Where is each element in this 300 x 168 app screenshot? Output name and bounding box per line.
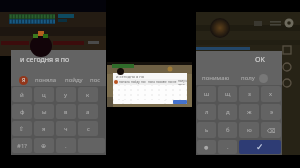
- staticText: ч: [64, 125, 68, 133]
- button[interactable]: [131, 90, 138, 95]
- button[interactable]: ⌫: [261, 122, 281, 138]
- button[interactable]: полу: [241, 74, 255, 82]
- button[interactable]: [138, 95, 145, 100]
- button[interactable]: [131, 85, 138, 90]
- button[interactable]: понимаю: [202, 74, 230, 82]
- button[interactable]: Keyboard logo: [19, 76, 28, 85]
- button[interactable]: ы: [34, 104, 54, 119]
- button[interactable]: [152, 90, 159, 95]
- button[interactable]: д: [218, 104, 237, 120]
- button[interactable]: пойду: [65, 76, 83, 84]
- button[interactable]: [173, 95, 180, 100]
- button[interactable]: [180, 90, 187, 95]
- button[interactable]: пойду: [131, 80, 140, 84]
- button[interactable]: поняла: [119, 80, 130, 84]
- button[interactable]: б: [218, 122, 237, 138]
- button[interactable]: OK: [196, 51, 282, 69]
- button[interactable]: ч: [56, 121, 76, 136]
- staticText: ⊕: [41, 142, 47, 149]
- staticText: й: [20, 91, 24, 99]
- staticText: к: [86, 91, 90, 99]
- button[interactable]: и сегодня я по: [113, 73, 187, 79]
- button[interactable]: ж: [239, 104, 259, 120]
- staticText: ь: [205, 126, 209, 134]
- button[interactable]: [159, 95, 166, 100]
- button[interactable]: Enter: [173, 100, 187, 104]
- button[interactable]: [125, 90, 131, 95]
- button[interactable]: я: [34, 121, 54, 136]
- button[interactable]: з: [239, 86, 259, 102]
- button[interactable]: ь: [197, 122, 216, 138]
- button[interactable]: Enter: [239, 140, 281, 154]
- button[interactable]: поняла: [35, 76, 57, 84]
- button[interactable]: Language: [123, 100, 131, 104]
- button[interactable]: пока: [148, 80, 155, 84]
- button[interactable]: [173, 85, 180, 90]
- button[interactable]: [152, 95, 159, 100]
- button[interactable]: [113, 85, 119, 90]
- button[interactable]: [119, 90, 125, 95]
- button[interactable]: похоже: [156, 80, 167, 84]
- button[interactable]: [113, 90, 119, 95]
- staticText: ✓: [256, 142, 264, 152]
- button[interactable]: Change language: [34, 138, 54, 153]
- button[interactable]: [125, 95, 131, 100]
- button[interactable]: Symbols: [113, 100, 123, 104]
- button[interactable]: л: [197, 104, 216, 120]
- button[interactable]: ю: [239, 122, 259, 138]
- button[interactable]: пос: [141, 80, 147, 84]
- staticText: .: [227, 143, 229, 151]
- button[interactable]: ш: [197, 86, 216, 102]
- button[interactable]: к: [78, 87, 98, 102]
- button[interactable]: [166, 90, 173, 95]
- button[interactable]: [119, 95, 125, 100]
- button[interactable]: [166, 85, 173, 90]
- staticText: б: [226, 126, 230, 134]
- button[interactable]: и сегодня я по: [11, 52, 106, 68]
- button[interactable]: [145, 90, 152, 95]
- button[interactable]: с: [78, 121, 98, 136]
- button[interactable]: получится: [178, 79, 187, 85]
- button[interactable]: х: [261, 86, 281, 102]
- button[interactable]: щ: [218, 86, 237, 102]
- button[interactable]: [138, 90, 145, 95]
- button[interactable]: [145, 95, 152, 100]
- button[interactable]: в: [56, 104, 76, 119]
- button[interactable]: [166, 95, 173, 100]
- button[interactable]: [138, 85, 145, 90]
- button[interactable]: [180, 85, 187, 90]
- button[interactable]: [180, 95, 187, 100]
- button[interactable]: после: [168, 80, 177, 84]
- button[interactable]: [131, 95, 138, 100]
- button[interactable]: ⇧: [12, 121, 32, 136]
- button[interactable]: [173, 90, 180, 95]
- button[interactable]: ц: [34, 87, 54, 102]
- staticText: ф: [20, 108, 25, 116]
- button[interactable]: Period: [165, 100, 173, 104]
- button[interactable]: Keyboard logo: [114, 80, 118, 84]
- button[interactable]: Voice input: [197, 140, 216, 154]
- staticText: Я: [22, 77, 26, 84]
- button[interactable]: у: [56, 87, 76, 102]
- button[interactable]: ф: [12, 104, 32, 119]
- button[interactable]: й: [12, 87, 32, 102]
- button[interactable]: [119, 85, 125, 90]
- staticText: ш: [204, 90, 210, 98]
- staticText: .: [65, 142, 67, 150]
- button[interactable]: э: [261, 104, 281, 120]
- button[interactable]: [125, 85, 131, 90]
- button[interactable]: #1?: [12, 138, 32, 153]
- button[interactable]: [152, 85, 159, 90]
- button[interactable]: [159, 90, 166, 95]
- button[interactable]: пос: [90, 76, 101, 84]
- button[interactable]: Emoji: [259, 74, 268, 83]
- button[interactable]: [145, 85, 152, 90]
- button[interactable]: [113, 95, 119, 100]
- button[interactable]: а: [78, 104, 98, 119]
- staticText: #1?: [17, 142, 27, 150]
- button[interactable]: [159, 85, 166, 90]
